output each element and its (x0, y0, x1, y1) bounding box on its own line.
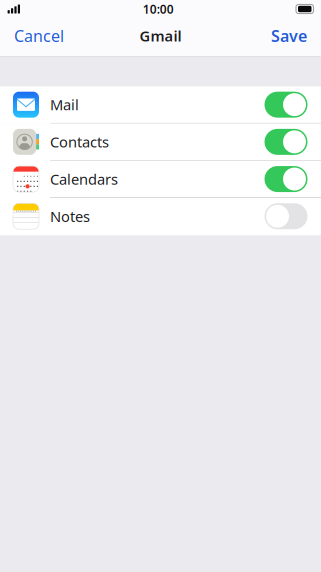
staticText: Mail (50, 95, 79, 114)
staticText: Notes (50, 206, 90, 226)
button[interactable]: Notes (0, 198, 321, 235)
staticText: 10:00 (143, 1, 174, 17)
button[interactable]: Mail (0, 86, 321, 124)
staticText: Contacts (50, 132, 109, 152)
button[interactable]: Cancel (0, 18, 72, 56)
staticText: Save (271, 25, 307, 46)
button[interactable]: Contacts (0, 124, 321, 161)
button[interactable]: Calendars (0, 161, 321, 198)
button[interactable]: Save (263, 18, 321, 56)
staticText: Gmail (139, 26, 181, 46)
staticText: Calendars (50, 169, 118, 189)
staticText: Cancel (14, 25, 64, 46)
